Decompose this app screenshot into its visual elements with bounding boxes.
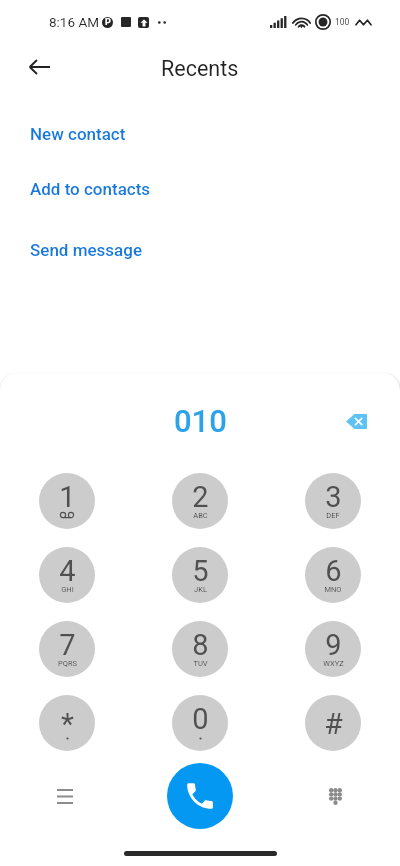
staticText: 6 xyxy=(325,554,342,588)
staticText: 4 xyxy=(59,554,76,588)
staticText: P xyxy=(105,17,111,28)
staticText: 2 xyxy=(192,480,209,514)
button[interactable]: Call xyxy=(167,763,233,829)
button[interactable]: 1 xyxy=(39,473,95,529)
staticText: 0 xyxy=(192,702,209,736)
button[interactable]: New contact xyxy=(0,121,400,147)
staticText: TUV xyxy=(193,659,208,668)
button[interactable]: Add to contacts xyxy=(0,176,400,202)
staticText: 8 xyxy=(192,628,209,662)
staticText: ABC xyxy=(193,511,208,520)
staticText: 7 xyxy=(59,628,76,662)
staticText: 8:16 AM xyxy=(49,14,99,30)
button[interactable]: 6 xyxy=(305,547,361,603)
staticText: 9 xyxy=(325,628,342,662)
button[interactable]: 8 xyxy=(172,621,228,677)
staticText: 100 xyxy=(335,17,350,27)
staticText: New contact xyxy=(30,124,126,144)
staticText: 010 xyxy=(174,403,227,439)
button[interactable]: # xyxy=(305,695,361,751)
staticText: Send message xyxy=(30,240,142,260)
button[interactable]: Back xyxy=(15,44,63,92)
button[interactable]: Call history xyxy=(41,772,89,820)
staticText: MNO xyxy=(324,585,342,594)
button[interactable]: 0 xyxy=(172,695,228,751)
staticText: WXYZ xyxy=(323,659,344,668)
staticText: 1 xyxy=(59,480,76,514)
staticText: JKL xyxy=(194,585,207,594)
button[interactable]: Backspace xyxy=(334,399,378,443)
button[interactable]: Send message xyxy=(0,237,400,263)
staticText: GHI xyxy=(61,585,74,594)
staticText: 3 xyxy=(325,480,342,514)
button[interactable]: 3 xyxy=(305,473,361,529)
button[interactable]: Dialpad xyxy=(311,772,359,820)
button[interactable]: 2 xyxy=(172,473,228,529)
button[interactable]: 9 xyxy=(305,621,361,677)
button[interactable]: 4 xyxy=(39,547,95,603)
staticText: Add to contacts xyxy=(30,179,151,199)
button[interactable]: * xyxy=(39,695,95,751)
staticText: PQRS xyxy=(58,659,77,668)
button[interactable]: 5 xyxy=(172,547,228,603)
staticText: # xyxy=(324,706,343,741)
staticText: * xyxy=(61,706,74,741)
staticText: DEF xyxy=(326,511,340,520)
button[interactable]: 7 xyxy=(39,621,95,677)
staticText: Recents xyxy=(161,56,239,81)
staticText: 5 xyxy=(192,554,209,588)
